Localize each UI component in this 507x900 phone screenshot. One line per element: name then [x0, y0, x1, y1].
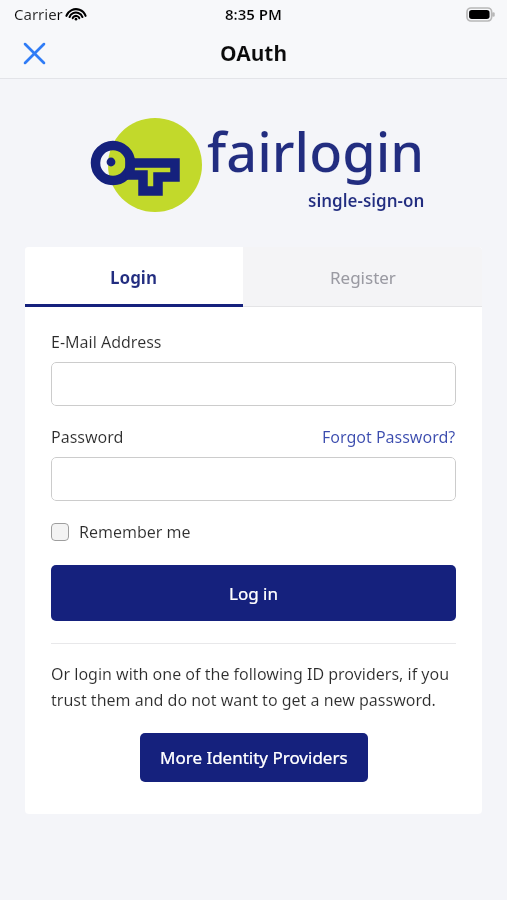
button[interactable]: Login	[25, 247, 243, 307]
staticText: OAuth	[220, 39, 288, 68]
button[interactable]: Forgot Password?	[322, 426, 456, 448]
button[interactable]: Text field	[51, 457, 456, 501]
button[interactable]: Log in	[51, 565, 456, 621]
staticText: fairlogin	[207, 114, 425, 188]
staticText: Register	[330, 266, 396, 289]
staticText: Forgot Password?	[322, 426, 456, 448]
staticText: More Identity Providers	[160, 746, 348, 769]
staticText: Login	[110, 266, 158, 289]
staticText: 8:35 PM	[225, 4, 282, 24]
staticText: Carrier	[14, 4, 63, 24]
button[interactable]: More Identity Providers	[140, 733, 368, 782]
staticText: single-sign-on	[308, 189, 425, 212]
staticText: E-Mail Address	[51, 331, 162, 353]
staticText: Password	[51, 426, 124, 448]
button[interactable]: Close	[14, 33, 54, 73]
button[interactable]: Remember me	[51, 521, 191, 543]
staticText: Log in	[229, 582, 278, 605]
button[interactable]: Text field	[51, 362, 456, 406]
button[interactable]: Register	[243, 247, 482, 307]
staticText: Remember me	[79, 521, 191, 543]
staticText: Or login with one of the following ID pr…	[51, 663, 456, 711]
